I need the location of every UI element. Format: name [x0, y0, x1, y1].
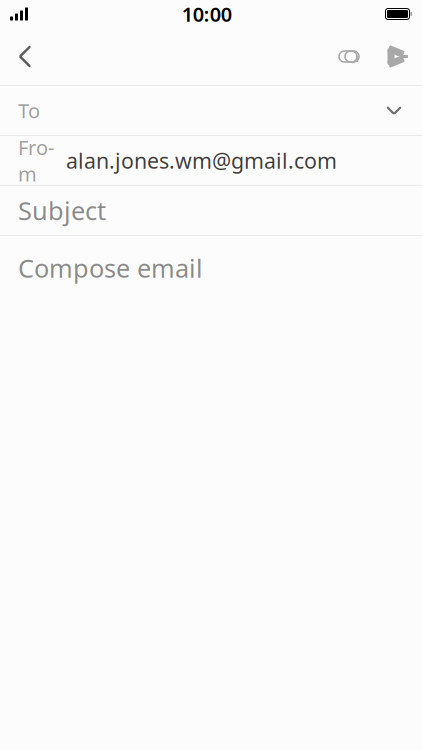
button[interactable]: Back — [0, 28, 50, 85]
staticText: Compose email — [18, 251, 203, 285]
button[interactable]: Compose email — [0, 236, 422, 493]
staticText: 10:00 — [182, 1, 232, 27]
button[interactable]: To — [0, 86, 422, 135]
button[interactable]: Subject — [0, 186, 422, 235]
button[interactable]: From — [0, 136, 422, 185]
staticText: alan.jones.wm@gmail.com — [66, 146, 337, 175]
staticText: To — [18, 97, 40, 124]
staticText: Subject — [18, 194, 106, 227]
staticText: From — [18, 134, 54, 187]
button[interactable]: Send — [372, 28, 422, 85]
button[interactable]: Attach file — [326, 28, 372, 85]
